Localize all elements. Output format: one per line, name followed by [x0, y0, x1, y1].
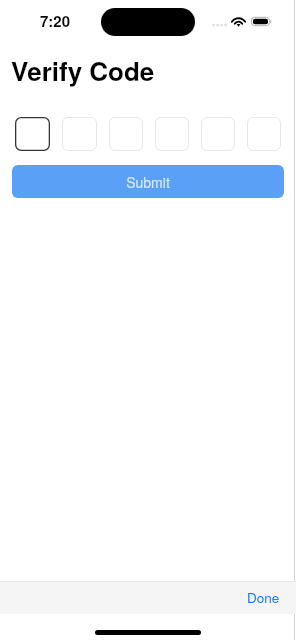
staticText: Done [247, 588, 280, 607]
button[interactable]: Code digit 2 [62, 117, 97, 151]
button[interactable]: Submit [12, 165, 284, 198]
staticText: Verify Code [11, 52, 155, 89]
button[interactable]: Code digit 4 [155, 117, 189, 151]
button[interactable]: Code digit 3 [109, 117, 143, 151]
button[interactable]: Code digit 5 [201, 117, 235, 151]
staticText: Submit [126, 172, 170, 192]
staticText: 7:20 [40, 10, 71, 31]
button[interactable]: Code digit 6 [247, 117, 281, 151]
button[interactable]: Done [230, 582, 296, 613]
button[interactable]: Code digit 1 [15, 117, 50, 151]
